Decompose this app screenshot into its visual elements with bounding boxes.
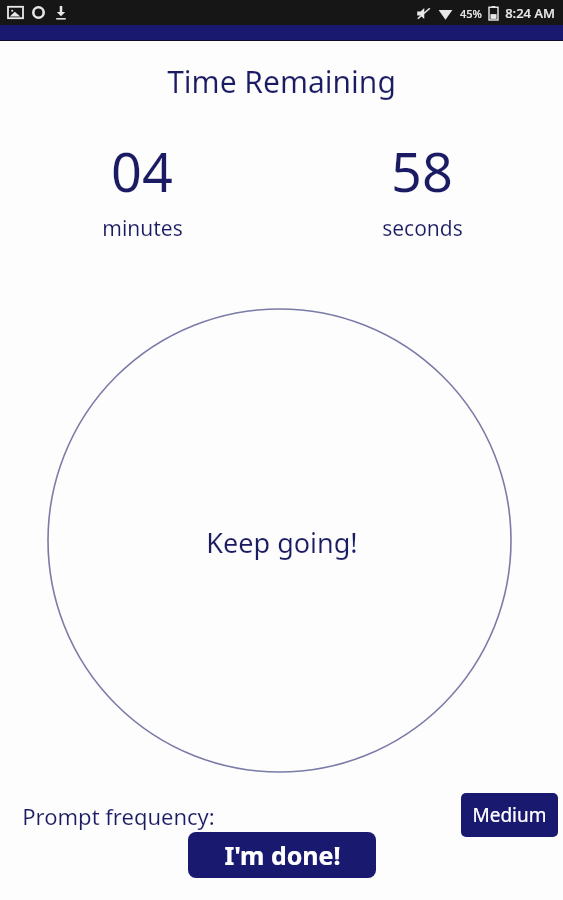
button[interactable]: I'm done! bbox=[188, 832, 376, 878]
staticText: 45% bbox=[460, 6, 482, 21]
staticText: Keep going! bbox=[206, 524, 358, 561]
staticText: 04 bbox=[111, 134, 173, 208]
staticText: 58 bbox=[391, 134, 453, 208]
staticText: Time Remaining bbox=[167, 61, 396, 102]
staticText: I'm done! bbox=[224, 838, 341, 872]
staticText: seconds bbox=[382, 214, 463, 243]
staticText: minutes bbox=[102, 214, 183, 243]
staticText: Medium bbox=[472, 802, 547, 828]
staticText: Prompt frequency: bbox=[22, 801, 215, 831]
staticText: 8:24 AM bbox=[505, 4, 555, 22]
button[interactable]: Medium bbox=[461, 793, 558, 837]
